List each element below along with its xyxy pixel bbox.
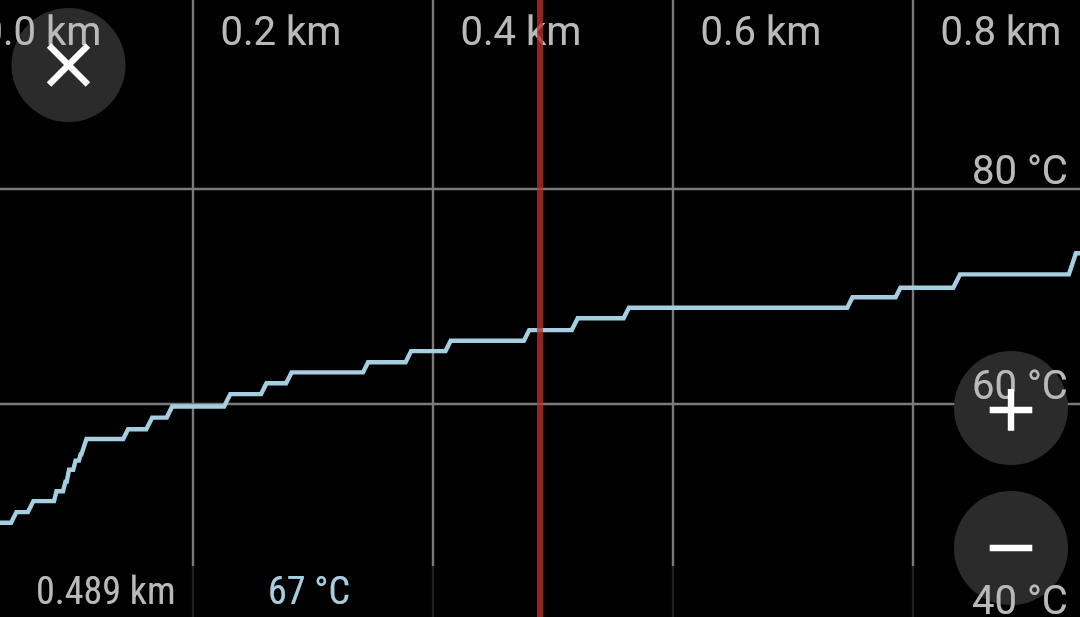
button[interactable]: Zoom out — [954, 491, 1068, 605]
button[interactable]: Zoom in — [954, 351, 1068, 465]
button[interactable]: Close chart — [11, 8, 125, 122]
